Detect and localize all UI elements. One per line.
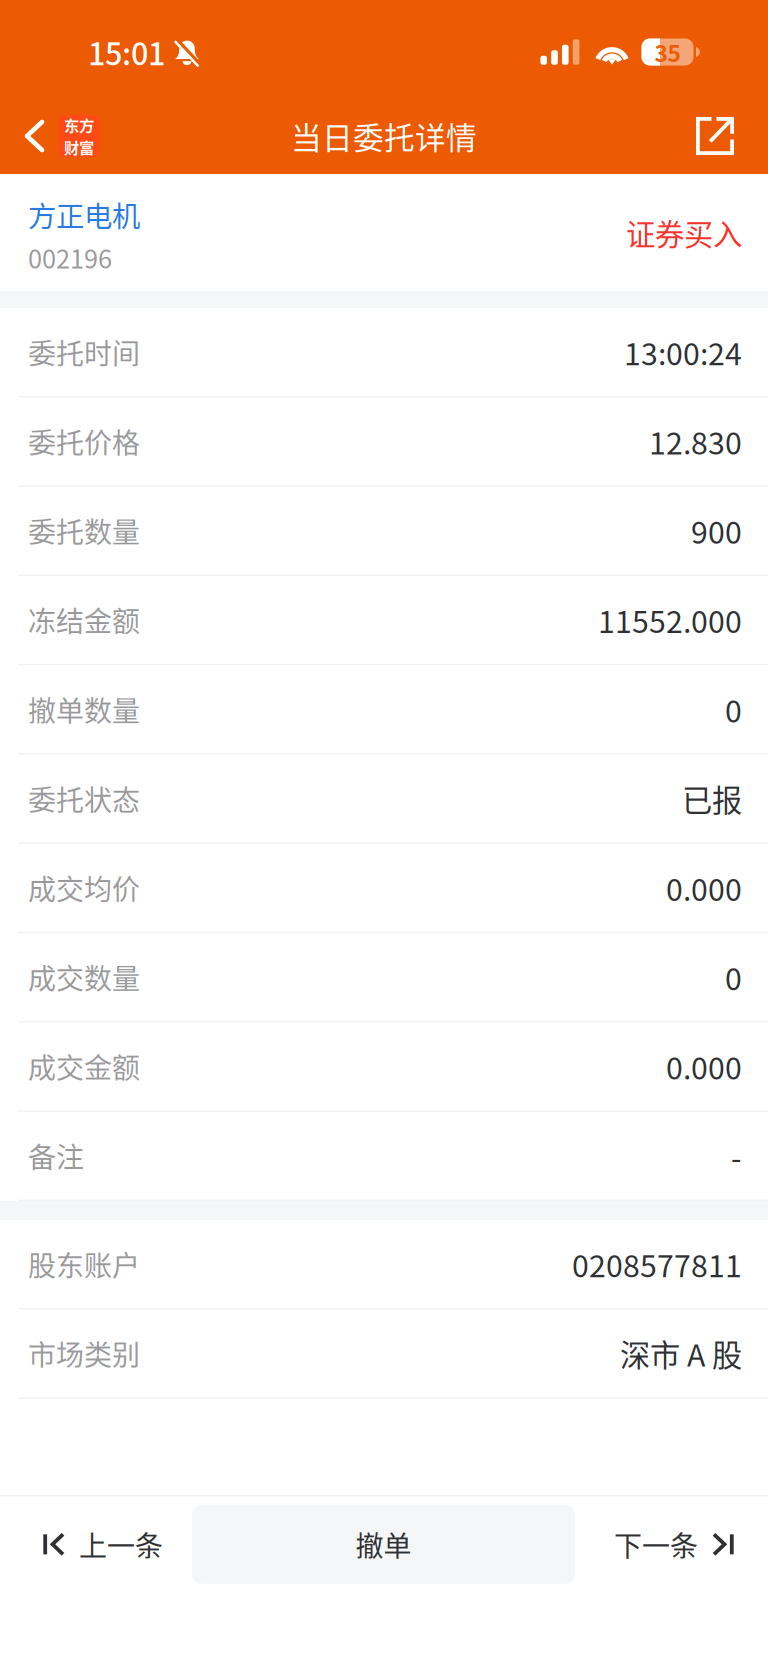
staticText: 13:00:24 (624, 330, 742, 374)
staticText: 委托数量 (28, 510, 140, 551)
staticText: 900 (691, 509, 742, 552)
button[interactable]: 返回 东方财富 (0, 101, 114, 171)
staticText: 财富 (64, 136, 94, 158)
staticText: 成交金额 (28, 1046, 140, 1087)
staticText: 委托状态 (28, 778, 140, 819)
button[interactable]: 撤单 (192, 1496, 575, 1592)
staticText: 002196 (28, 239, 112, 276)
staticText: 0.000 (666, 866, 742, 910)
staticText: 备注 (28, 1135, 84, 1176)
staticText: 撤单数量 (28, 689, 140, 729)
staticText: 0208577811 (572, 1242, 742, 1286)
staticText: 成交均价 (28, 867, 140, 908)
staticText: 股东账户 (28, 1244, 140, 1284)
staticText: 方正电机 (28, 194, 140, 235)
staticText: 委托时间 (28, 332, 140, 372)
staticText: 上一条 (79, 1524, 163, 1564)
staticText: 深市 A 股 (620, 1331, 742, 1375)
staticText: 下一条 (614, 1524, 698, 1564)
staticText: 证券买入 (626, 211, 742, 254)
staticText: 成交数量 (28, 957, 140, 997)
staticText: 15:01 (88, 30, 165, 74)
staticText: 12.830 (649, 419, 742, 463)
button[interactable]: 下一条 (575, 1496, 768, 1592)
staticText: 撤单 (355, 1524, 411, 1564)
staticText: 35 (654, 36, 680, 68)
staticText: 0 (725, 687, 742, 731)
staticText: 0.000 (666, 1044, 742, 1088)
staticText: 市场类别 (28, 1333, 140, 1373)
staticText: 冻结金额 (28, 600, 140, 640)
staticText: 东方 (64, 114, 94, 136)
staticText: 已报 (682, 777, 742, 820)
staticText: - (731, 1134, 742, 1178)
staticText: 0 (725, 955, 742, 999)
button[interactable]: 分享 (680, 101, 768, 171)
staticText: 11552.000 (598, 598, 742, 642)
button[interactable]: 上一条 (0, 1496, 192, 1592)
staticText: 委托价格 (28, 421, 140, 461)
staticText: 当日委托详情 (291, 114, 477, 158)
